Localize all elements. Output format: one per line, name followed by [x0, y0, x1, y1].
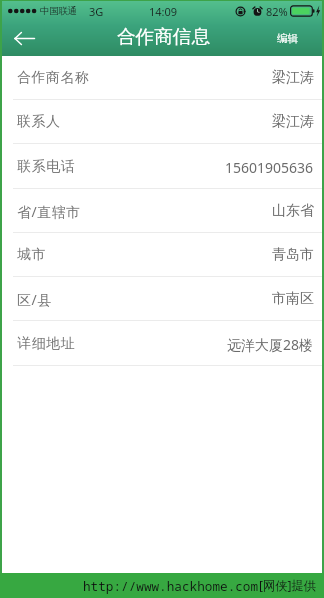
staticText: 82%: [266, 4, 288, 19]
button[interactable]: 详细地址: [2, 322, 322, 366]
button[interactable]: 联系人: [2, 100, 322, 144]
staticText: 远洋大厦28楼: [227, 335, 314, 354]
button[interactable]: 联系电话: [2, 145, 322, 189]
staticText: 青岛市: [272, 246, 314, 264]
staticText: 联系人: [17, 113, 61, 131]
staticText: 中国联通: [40, 5, 77, 17]
staticText: 市南区: [272, 290, 314, 308]
staticText: 联系电话: [17, 158, 75, 176]
staticText: http://www.hackhome.com: [83, 577, 259, 594]
staticText: 城市: [17, 246, 46, 264]
staticText: 梁江涛: [272, 113, 314, 131]
staticText: 14:09: [149, 4, 178, 19]
button[interactable]: Back: [2, 21, 46, 56]
staticText: 梁江涛: [272, 69, 314, 87]
staticText: 3G: [89, 4, 104, 19]
staticText: 编辑: [277, 32, 298, 45]
button[interactable]: 城市: [2, 233, 322, 277]
staticText: [网侠]提供: [259, 577, 316, 594]
staticText: 山东省: [272, 202, 314, 220]
staticText: 区/县: [17, 290, 52, 309]
staticText: 省/直辖市: [17, 202, 81, 221]
button[interactable]: 合作商名称: [2, 56, 322, 100]
staticText: 合作商信息: [117, 25, 210, 48]
button[interactable]: 区/县: [2, 277, 322, 321]
staticText: 合作商名称: [17, 69, 90, 87]
staticText: 详细地址: [17, 335, 75, 353]
staticText: 15601905636: [225, 158, 314, 177]
button[interactable]: 省/直辖市: [2, 189, 322, 233]
button[interactable]: 编辑: [265, 24, 322, 53]
